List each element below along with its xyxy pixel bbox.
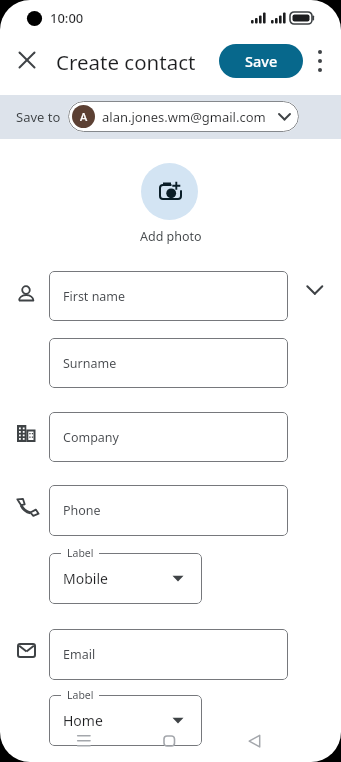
staticText: Email bbox=[63, 646, 96, 663]
staticText: Save bbox=[245, 51, 278, 71]
staticText: alan.jones.wm@gmail.com bbox=[102, 108, 266, 126]
staticText: 10:00 bbox=[50, 9, 84, 27]
staticText: Home bbox=[63, 711, 103, 730]
button[interactable]: Surname bbox=[49, 338, 288, 388]
staticText: Label bbox=[67, 688, 94, 702]
button[interactable]: Save bbox=[219, 44, 303, 78]
button[interactable]: A bbox=[68, 101, 299, 132]
staticText: Mobile bbox=[63, 569, 108, 588]
button[interactable] bbox=[302, 280, 328, 301]
button[interactable] bbox=[308, 47, 332, 75]
staticText: Create contact bbox=[56, 48, 196, 74]
button[interactable] bbox=[70, 727, 98, 755]
staticText: Label bbox=[67, 546, 94, 560]
button[interactable]: Email bbox=[49, 629, 288, 680]
button[interactable] bbox=[240, 727, 268, 755]
staticText: A bbox=[80, 109, 88, 124]
staticText: Add photo bbox=[140, 228, 202, 245]
staticText: Phone bbox=[63, 502, 101, 519]
button[interactable] bbox=[13, 46, 41, 74]
staticText: First name bbox=[63, 288, 126, 305]
button[interactable]: Phone bbox=[49, 485, 288, 536]
button[interactable]: Home bbox=[49, 695, 202, 746]
staticText: Save to bbox=[16, 108, 61, 126]
button[interactable] bbox=[155, 727, 183, 755]
button[interactable] bbox=[141, 163, 198, 220]
button[interactable]: Mobile bbox=[49, 553, 202, 604]
button[interactable]: First name bbox=[49, 271, 288, 321]
staticText: Surname bbox=[63, 355, 117, 372]
button[interactable]: Company bbox=[49, 412, 288, 462]
staticText: Company bbox=[63, 429, 119, 446]
